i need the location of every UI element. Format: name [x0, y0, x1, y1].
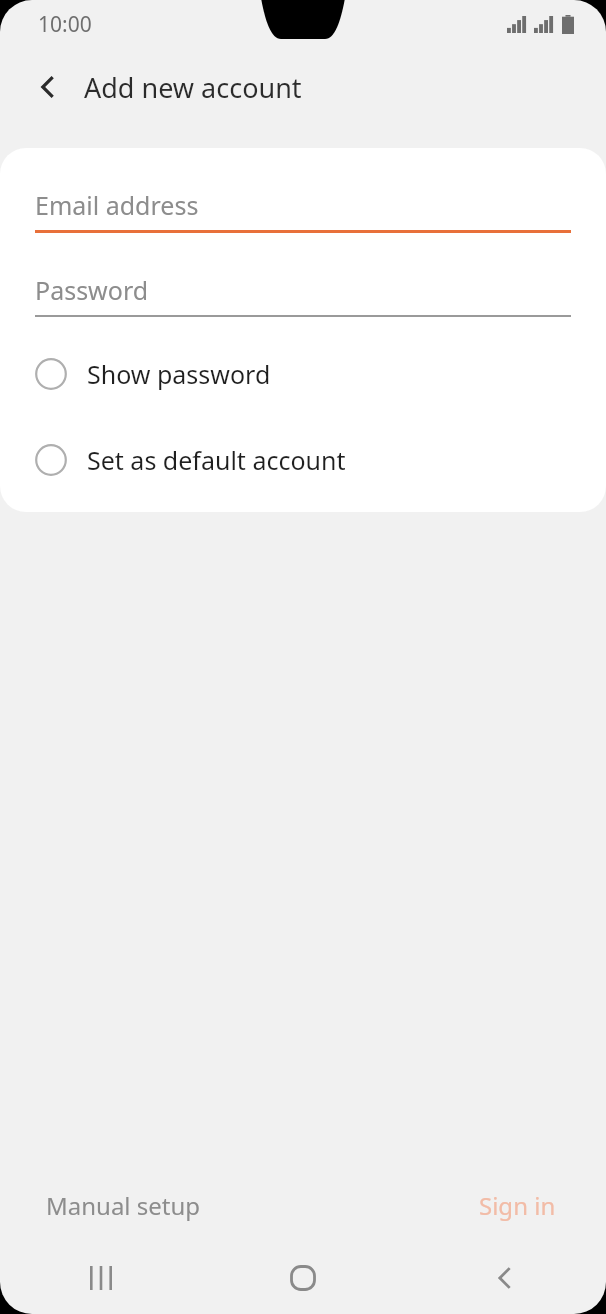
- staticText: Set as default account: [87, 443, 346, 477]
- staticText: Show password: [87, 357, 271, 391]
- button[interactable]: Back: [404, 1242, 606, 1314]
- button[interactable]: Manual setup: [24, 1179, 223, 1232]
- button[interactable]: Password: [35, 273, 571, 317]
- staticText: Add new account: [84, 69, 302, 106]
- button[interactable]: Sign in: [457, 1179, 578, 1232]
- button[interactable]: Recent apps: [0, 1242, 202, 1314]
- button[interactable]: Back: [20, 59, 76, 115]
- button[interactable]: Home: [202, 1242, 404, 1314]
- staticText: 10:00: [38, 10, 92, 39]
- staticText: Sign in: [479, 1189, 556, 1222]
- button[interactable]: Show password: [0, 345, 606, 403]
- button[interactable]: Set as default account: [0, 431, 606, 489]
- staticText: Email address: [35, 188, 199, 222]
- staticText: Manual setup: [46, 1189, 201, 1222]
- button[interactable]: Email address: [35, 188, 571, 233]
- staticText: Password: [35, 273, 149, 307]
